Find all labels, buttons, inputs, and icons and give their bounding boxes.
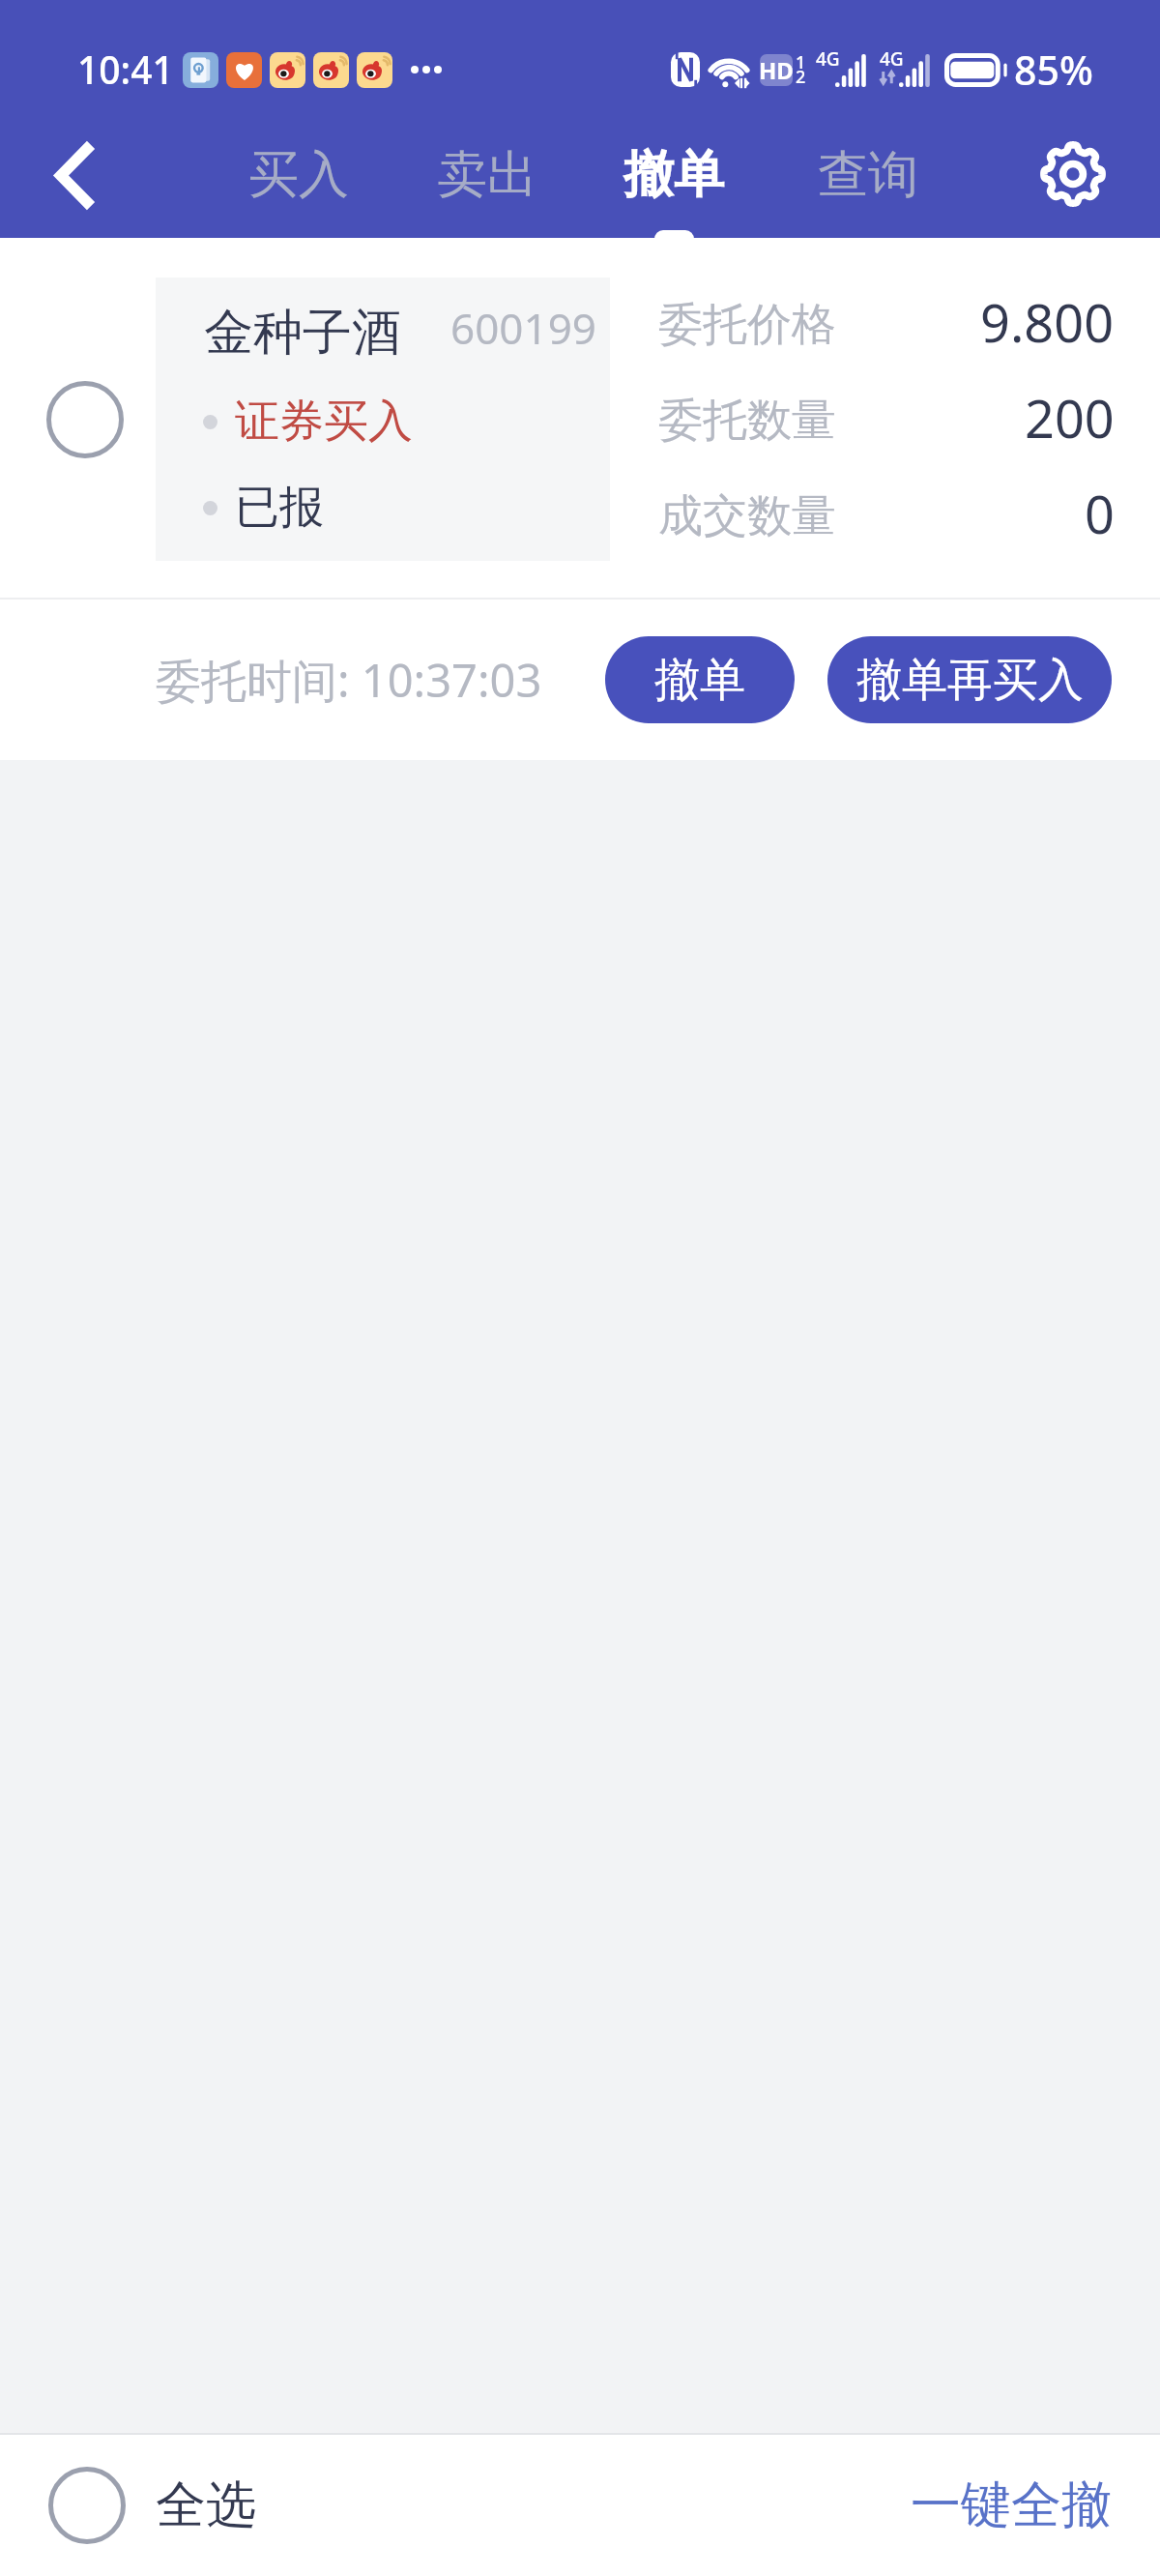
staticText: 1: [796, 50, 806, 74]
staticText: 证券买入: [235, 394, 413, 450]
staticText: 金种子酒: [204, 302, 401, 364]
staticText: 4G: [880, 46, 904, 72]
staticText: 85%: [1014, 43, 1093, 93]
button[interactable]: 查询: [796, 114, 941, 238]
staticText: 0: [1085, 478, 1115, 542]
staticText: 9.800: [980, 286, 1115, 350]
staticText: 2: [796, 65, 806, 89]
staticText: 撤单: [654, 652, 745, 709]
staticText: 成交数量: [658, 488, 836, 544]
button[interactable]: [17, 352, 153, 487]
button[interactable]: 卖出: [415, 114, 560, 238]
button[interactable]: Back: [24, 126, 121, 222]
staticText: HD: [759, 54, 794, 86]
staticText: 4G: [816, 46, 840, 72]
staticText: 撤单再买入: [856, 652, 1084, 709]
button[interactable]: 撤单: [601, 114, 746, 238]
button[interactable]: 全选: [29, 2435, 279, 2576]
staticText: 10:41: [77, 44, 174, 94]
staticText: 一键全撤: [911, 2474, 1112, 2537]
staticText: 全选: [156, 2474, 256, 2537]
staticText: 已报: [235, 480, 324, 536]
staticText: 委托数量: [658, 393, 836, 449]
staticText: 查询: [818, 143, 918, 207]
staticText: 600199: [450, 299, 597, 357]
button[interactable]: 撤单: [605, 636, 795, 723]
button[interactable]: 一键全撤: [862, 2435, 1160, 2576]
button[interactable]: 撤单再买入: [827, 636, 1112, 723]
staticText: 卖出: [437, 143, 537, 207]
staticText: 买入: [248, 143, 349, 207]
staticText: 撤单: [623, 143, 724, 207]
staticText: 委托时间: 10:37:03: [156, 649, 542, 711]
staticText: 委托价格: [658, 297, 836, 353]
button[interactable]: 买入: [226, 114, 371, 238]
staticText: 200: [1025, 382, 1115, 446]
button[interactable]: Settings: [1027, 128, 1119, 220]
